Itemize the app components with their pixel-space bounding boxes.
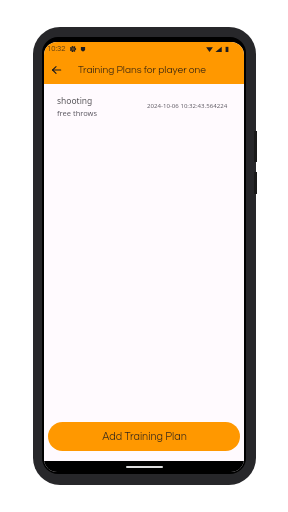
staticText: 2024-10-06 10:32:43.564224 bbox=[147, 101, 228, 109]
staticText: free throws bbox=[57, 108, 98, 118]
button[interactable]: Back bbox=[47, 61, 65, 79]
button[interactable]: Add Training Plan bbox=[48, 422, 240, 451]
staticText: Training Plans for player one bbox=[78, 65, 207, 76]
staticText: shooting bbox=[57, 95, 93, 107]
button[interactable]: shooting bbox=[44, 95, 244, 118]
staticText: 10:32 bbox=[47, 45, 66, 53]
staticText: Add Training Plan bbox=[102, 431, 187, 442]
